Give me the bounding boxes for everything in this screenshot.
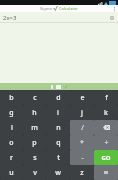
button[interactable]: f bbox=[94, 90, 118, 105]
staticText: Calculator bbox=[59, 6, 78, 11]
button[interactable]: * bbox=[70, 135, 94, 150]
button[interactable]: h bbox=[23, 105, 46, 120]
button[interactable]: n bbox=[46, 120, 70, 135]
button[interactable]: e bbox=[70, 90, 94, 105]
button[interactable]: u bbox=[0, 165, 23, 180]
button[interactable]: - bbox=[70, 150, 94, 165]
button[interactable]: i bbox=[46, 105, 70, 120]
button[interactable]: b bbox=[0, 90, 23, 105]
button[interactable]: Voice input bbox=[64, 85, 68, 89]
staticText: i bbox=[57, 108, 59, 118]
staticText: d bbox=[56, 93, 61, 103]
button[interactable]: s bbox=[23, 150, 46, 165]
staticText: k bbox=[104, 108, 108, 118]
staticText: u bbox=[9, 168, 14, 178]
button[interactable]: 2x=3 bbox=[0, 12, 118, 23]
staticText: e bbox=[80, 93, 85, 103]
button[interactable]: GO bbox=[94, 150, 118, 165]
staticText: + bbox=[104, 138, 109, 148]
staticText: q bbox=[56, 138, 61, 148]
button[interactable]: q bbox=[46, 135, 70, 150]
button[interactable]: o bbox=[0, 135, 23, 150]
button[interactable]: l bbox=[0, 120, 23, 135]
staticText: n bbox=[56, 123, 61, 133]
button[interactable]: / bbox=[70, 120, 94, 135]
button[interactable]: c bbox=[23, 90, 46, 105]
button[interactable]: j bbox=[70, 105, 94, 120]
button[interactable]: + bbox=[94, 135, 118, 150]
staticText: / bbox=[81, 123, 84, 133]
staticText: 2x=3 bbox=[3, 14, 17, 22]
button[interactable]: Backspace bbox=[94, 120, 118, 135]
button[interactable]: Symbols keyboard bbox=[94, 165, 118, 180]
staticText: l bbox=[11, 123, 13, 133]
staticText: t bbox=[57, 153, 60, 163]
button[interactable]: p bbox=[23, 135, 46, 150]
staticText: r bbox=[10, 153, 13, 163]
staticText: o bbox=[9, 138, 14, 148]
button[interactable]: m bbox=[23, 120, 46, 135]
staticText: v bbox=[33, 168, 37, 178]
button[interactable]: d bbox=[46, 90, 70, 105]
button[interactable]: w bbox=[46, 165, 70, 180]
staticText: c bbox=[33, 93, 37, 103]
button[interactable]: g bbox=[0, 105, 23, 120]
staticText: w bbox=[55, 168, 61, 178]
staticText: z bbox=[80, 168, 84, 178]
staticText: j bbox=[81, 108, 83, 118]
staticText: s bbox=[33, 153, 37, 163]
staticText: * bbox=[80, 138, 84, 148]
staticText: b bbox=[9, 93, 14, 103]
button[interactable]: More options bbox=[112, 6, 116, 12]
staticText: - bbox=[81, 153, 84, 163]
button[interactable]: r bbox=[0, 150, 23, 165]
button[interactable]: z bbox=[70, 165, 94, 180]
staticText: GO bbox=[101, 154, 111, 162]
button[interactable]: v bbox=[23, 165, 46, 180]
staticText: h bbox=[32, 108, 37, 118]
staticText: m bbox=[31, 123, 38, 133]
button[interactable]: t bbox=[46, 150, 70, 165]
staticText: g bbox=[9, 108, 14, 118]
staticText: Sigma bbox=[40, 6, 52, 11]
staticText: f bbox=[105, 93, 108, 103]
staticText: p bbox=[32, 138, 37, 148]
button[interactable]: k bbox=[94, 105, 118, 120]
button[interactable]: Clear input bbox=[108, 14, 115, 21]
